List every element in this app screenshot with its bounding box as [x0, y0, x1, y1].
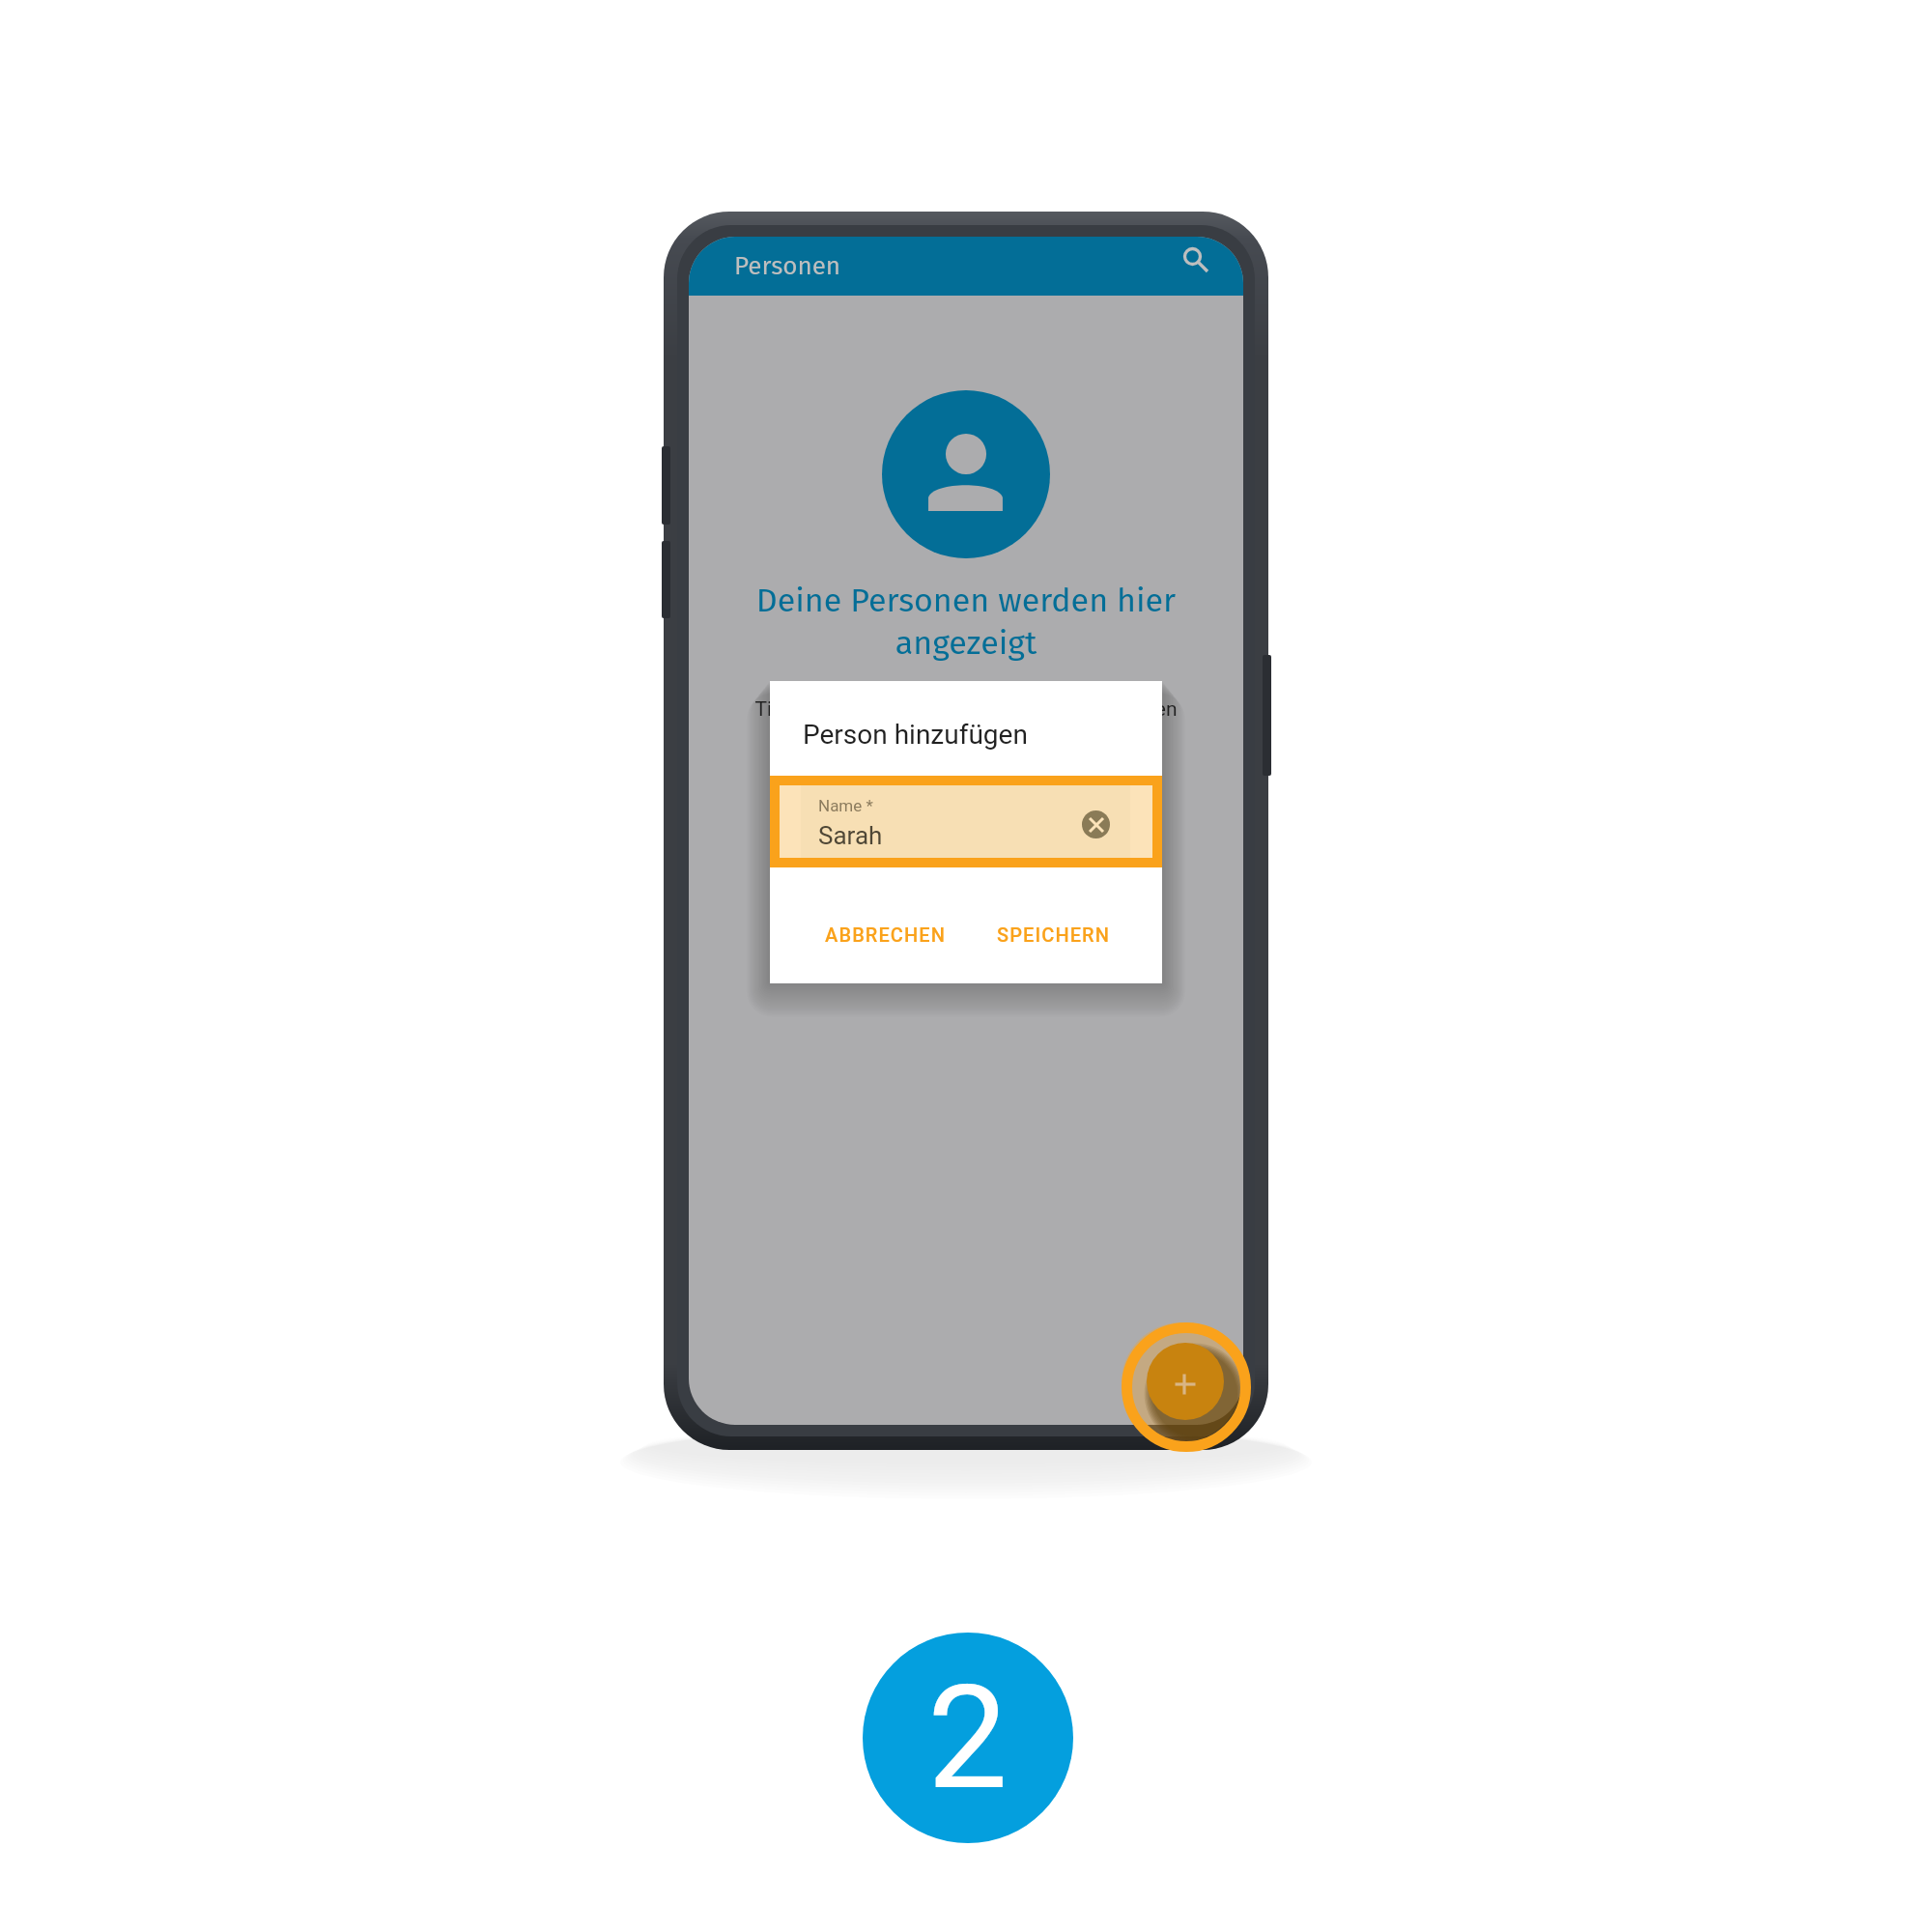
staticText: ABBRECHEN	[825, 923, 947, 946]
staticText: Sarah	[818, 821, 883, 850]
button[interactable]: SPEICHERN	[981, 916, 1126, 953]
button[interactable]: Clear text	[1082, 810, 1110, 838]
button[interactable]: Search	[1175, 246, 1215, 287]
staticText: Person hinzufügen	[803, 719, 1028, 751]
button[interactable]: Add person	[1147, 1343, 1224, 1420]
staticText: 2	[927, 1655, 1009, 1822]
staticText: Tippe auf das Plus, um Personen hinzuzuf…	[744, 697, 1188, 722]
staticText: Name *	[818, 796, 873, 815]
staticText: Deine Personen werden hier angezeigt	[748, 581, 1184, 663]
staticText: Personen	[734, 251, 841, 281]
button[interactable]: ABBRECHEN	[810, 916, 962, 953]
staticText: SPEICHERN	[997, 923, 1111, 946]
